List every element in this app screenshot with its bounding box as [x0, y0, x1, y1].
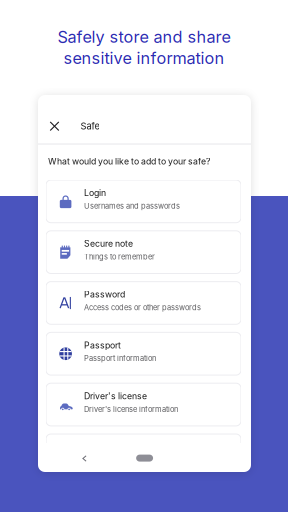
button[interactable]: Login: [46, 180, 241, 223]
staticText: Passport: [84, 340, 121, 350]
staticText: Usernames and passwords: [84, 201, 180, 210]
staticText: Things to remember: [84, 252, 155, 261]
staticText: Account numbers and details: [84, 455, 184, 464]
button[interactable]: Back: [73, 448, 95, 468]
staticText: sensitive information: [63, 48, 224, 68]
staticText: Access codes or other passwords: [84, 303, 201, 312]
staticText: What would you like to add to your safe?: [48, 156, 210, 167]
staticText: Driver's license: [84, 391, 147, 401]
staticText: Passport information: [84, 354, 156, 363]
staticText: Login: [84, 188, 106, 198]
button[interactable]: Driver's license: [46, 383, 241, 426]
staticText: Secure note: [84, 238, 133, 249]
button[interactable]: Secure note: [46, 231, 241, 273]
staticText: Driver's license information: [84, 405, 178, 414]
button[interactable]: Close: [42, 114, 66, 138]
button[interactable]: Password: [46, 282, 241, 324]
button[interactable]: Bank account: [46, 434, 241, 477]
staticText: Safe: [80, 120, 99, 132]
staticText: Password: [84, 289, 125, 300]
staticText: Safely store and share: [57, 27, 230, 47]
button[interactable]: Passport: [46, 332, 241, 375]
